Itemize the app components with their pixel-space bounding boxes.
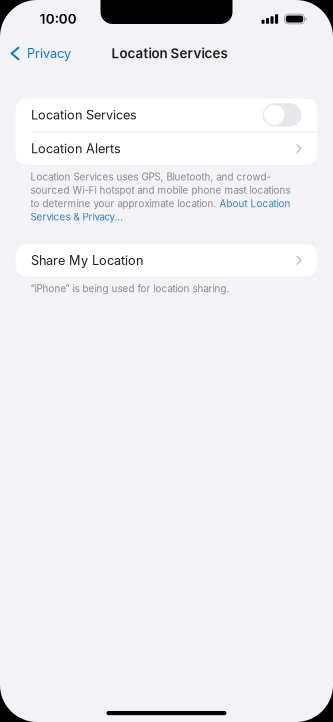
staticText: Share My Location [31,253,143,268]
button[interactable]: Location Services [16,98,317,131]
button[interactable]: About Location [220,198,291,210]
button[interactable]: Location Alerts [16,132,317,165]
staticText: to determine your approximate location. [31,198,220,210]
button[interactable]: Services & Privacy… [31,211,123,223]
staticText: Location Services uses GPS, Bluetooth, a… [31,171,271,183]
staticText: Location Alerts [31,141,121,156]
staticText: About Location [220,198,291,210]
staticText: Services & Privacy… [31,211,123,223]
staticText: Location Services [31,107,137,123]
staticText: Privacy [27,46,71,61]
button[interactable]: Share My Location [16,244,317,277]
button[interactable]: Privacy [0,38,79,69]
staticText: “iPhone” is being used for location shar… [31,283,230,294]
staticText: sourced Wi-Fi hotspot and mobile phone m… [31,184,291,196]
staticText: Location Services [111,45,227,61]
staticText: 10:00 [40,11,77,27]
